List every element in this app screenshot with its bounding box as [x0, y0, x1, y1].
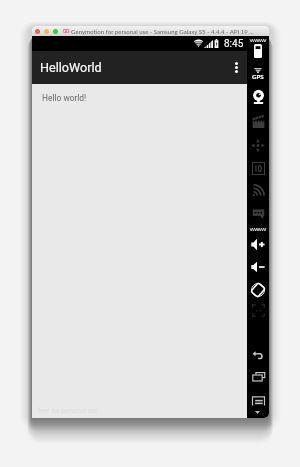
button[interactable]: Volume up [247, 233, 269, 255]
staticText: Genymotion for personal use - Samsung Ga… [71, 28, 254, 35]
button[interactable]: Volume down [247, 256, 269, 278]
button[interactable]: Window control [35, 29, 40, 34]
staticText: GPS [252, 73, 264, 80]
staticText: HelloWorld [40, 60, 102, 75]
button[interactable]: Recent apps [247, 366, 269, 388]
button[interactable]: Record video [247, 110, 269, 132]
button[interactable]: Full screen [247, 299, 269, 321]
button[interactable]: Directional pad [247, 134, 269, 156]
button[interactable]: Battery [247, 40, 269, 62]
button[interactable]: Menu [247, 390, 269, 412]
button[interactable]: Network [247, 179, 269, 201]
staticText: 8:45 [224, 38, 244, 50]
button[interactable]: Back [247, 344, 269, 366]
button[interactable]: Camera [247, 86, 269, 108]
staticText: free for personal use [38, 406, 98, 414]
button[interactable]: Rotate screen [247, 279, 269, 301]
staticText: Hello world! [42, 93, 87, 103]
button[interactable]: Messages [247, 202, 269, 224]
button[interactable]: GPS [247, 63, 269, 85]
button[interactable]: Window control [44, 29, 49, 34]
button[interactable]: Window control [53, 29, 58, 34]
button[interactable]: More options [225, 51, 247, 84]
button[interactable]: Identifiers [247, 157, 269, 179]
